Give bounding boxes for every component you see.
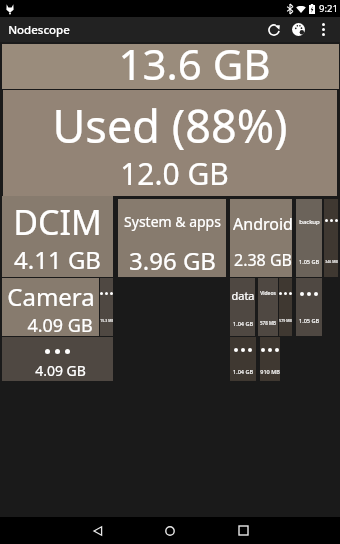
- staticText: 12.0 GB: [120, 153, 229, 194]
- button[interactable]: 1.05 GB: [296, 278, 322, 336]
- staticText: backup: [299, 218, 320, 226]
- staticText: DCIM: [13, 199, 102, 245]
- button[interactable]: backup: [296, 199, 322, 277]
- staticText: 1.04 GB: [233, 320, 253, 327]
- staticText: Nodescope: [8, 22, 70, 38]
- staticText: Android: [233, 213, 293, 235]
- staticText: 15.3 MB: [100, 318, 113, 323]
- staticText: 9:21: [319, 2, 338, 15]
- button[interactable]: 346 MB: [324, 199, 338, 277]
- staticText: Videos: [260, 290, 276, 297]
- staticText: 3.96 GB: [129, 244, 216, 277]
- button[interactable]: Recent apps: [221, 517, 265, 544]
- staticText: Used (88%): [52, 95, 288, 156]
- button[interactable]: Home: [148, 517, 192, 544]
- staticText: 2.38 GB: [234, 249, 292, 271]
- button[interactable]: 15.3 MB: [100, 278, 113, 336]
- button[interactable]: Change palette: [286, 17, 311, 42]
- staticText: 1.04 GB: [233, 368, 253, 375]
- staticText: 4.11 GB: [14, 243, 101, 276]
- staticText: System & apps: [124, 212, 221, 231]
- staticText: 579 MB: [279, 318, 292, 323]
- staticText: Camera: [7, 280, 95, 313]
- staticText: 13.6 GB: [118, 35, 271, 80]
- button[interactable]: 579 MB: [279, 278, 292, 336]
- staticText: 4.09 GB: [35, 361, 86, 380]
- button[interactable]: Android: [230, 199, 292, 277]
- staticText: 578 MB: [260, 320, 276, 326]
- button[interactable]: 4.09 GB: [2, 337, 113, 381]
- staticText: 1.05 GB: [299, 317, 319, 324]
- button[interactable]: Videos: [258, 278, 278, 336]
- staticText: 346 MB: [325, 259, 338, 264]
- button[interactable]: 1.04 GB: [230, 337, 256, 381]
- button[interactable]: 13.6 GB total: [2, 44, 339, 89]
- button[interactable]: More options: [311, 17, 336, 42]
- button[interactable]: Refresh: [261, 17, 286, 42]
- button[interactable]: DCIM: [2, 196, 113, 277]
- button[interactable]: Back: [76, 517, 120, 544]
- button[interactable]: 910 MB: [260, 337, 280, 381]
- button[interactable]: data: [230, 278, 255, 336]
- staticText: data: [231, 288, 255, 303]
- button[interactable]: Camera: [2, 278, 99, 336]
- staticText: 1.05 GB: [299, 258, 319, 265]
- button[interactable]: System & apps: [118, 199, 226, 277]
- staticText: 4.09 GB: [27, 313, 93, 338]
- button[interactable]: Used 88 percent: [3, 90, 337, 196]
- staticText: 910 MB: [260, 368, 280, 375]
